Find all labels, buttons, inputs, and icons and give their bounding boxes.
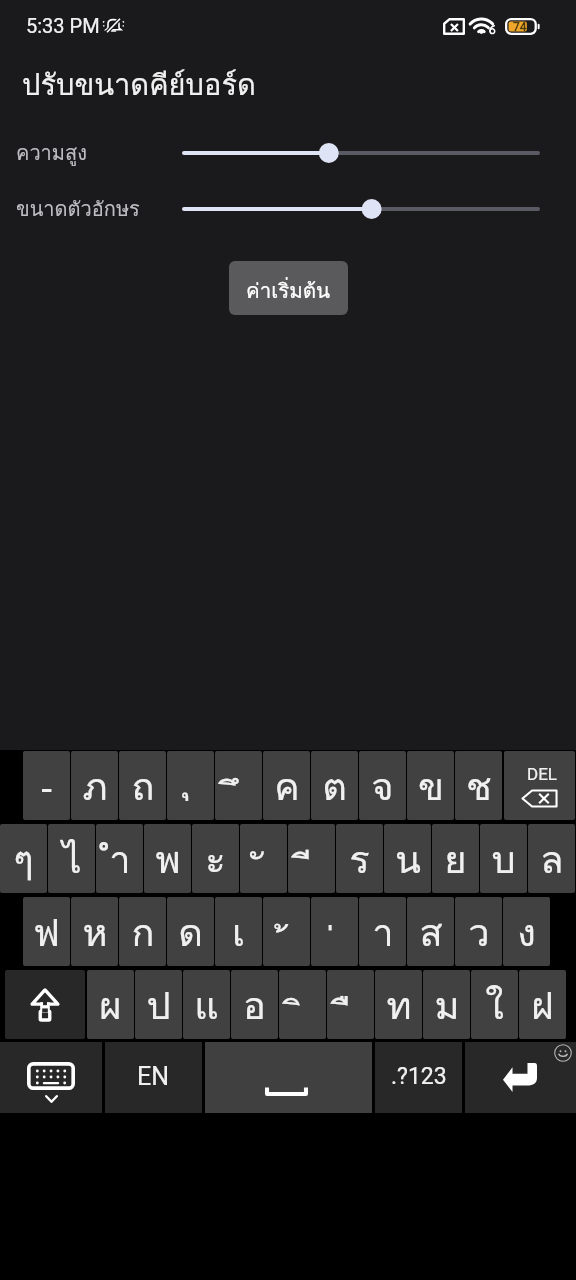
button[interactable]: ี [288,824,335,893]
staticText: น [395,829,421,889]
staticText: ๆ [13,829,34,889]
button[interactable]: ื [327,970,374,1039]
button[interactable]: พ [144,824,191,893]
button[interactable]: ผ [87,970,134,1039]
staticText: ท [386,975,412,1035]
button[interactable]: ส [407,897,454,966]
button[interactable]: น [384,824,431,893]
staticText: แ [194,975,219,1035]
staticText: ด [178,902,203,962]
button[interactable]: Enter [465,1042,576,1113]
button[interactable]: - [23,751,70,820]
button[interactable]: ฝ [519,970,566,1039]
button[interactable]: Delete [504,751,575,820]
staticText: .?123 [391,1063,447,1090]
staticText: ค่าเริ่มต้น [246,274,331,307]
staticText: ล [540,829,564,889]
staticText: ว [468,902,490,962]
staticText: ต [322,756,347,816]
staticText: 74 [513,20,527,34]
button[interactable]: ห [71,897,118,966]
button[interactable]: ข [407,751,454,820]
button[interactable]: ภ [71,751,118,820]
staticText: ขนาดตัวอักษร [16,193,140,225]
button[interactable]: ช [455,751,502,820]
button[interactable]: ง [503,897,550,966]
staticText: ก [131,902,155,962]
staticText: ภ [82,756,108,816]
button[interactable]: ฟ [23,897,70,966]
button[interactable]: ั [240,824,287,893]
button[interactable]: ด [167,897,214,966]
button[interactable]: EN [105,1042,202,1113]
button[interactable]: ค่าเริ่มต้น [229,261,348,315]
button[interactable]: ท [375,970,422,1039]
staticText: EN [137,1062,170,1091]
button[interactable]: ใ [471,970,518,1039]
staticText: บ [491,829,516,889]
button[interactable]: อ [231,970,278,1039]
button[interactable]: ป [135,970,182,1039]
staticText: ปรับขนาดคีย์บอร์ด [22,62,256,108]
button[interactable]: ้ [263,897,310,966]
button[interactable]: ำ [96,824,143,893]
staticText: ม [434,975,460,1035]
button[interactable]: ะ [192,824,239,893]
button[interactable]: Hide keyboard [0,1042,102,1113]
button[interactable]: ไ [48,824,95,893]
staticText: ห [82,902,108,962]
staticText: ข [418,756,444,816]
button[interactable]: Shift [5,970,85,1039]
button[interactable]: จ [359,751,406,820]
staticText: พ [155,829,181,889]
staticText: ไ [62,829,82,889]
staticText: ป [146,975,171,1035]
button[interactable]: ุ [167,751,214,820]
staticText: จ [371,756,394,816]
button[interactable]: ๆ [0,824,47,893]
button[interactable]: ล [528,824,575,893]
staticText: า [372,902,394,962]
button[interactable]: ม [423,970,470,1039]
button[interactable]: า [359,897,406,966]
button[interactable]: ก [119,897,166,966]
staticText: ร [349,829,370,889]
staticText: ะ [205,829,226,889]
staticText: DEL [527,764,557,784]
button[interactable]: ว [455,897,502,966]
staticText: ฟ [33,902,60,962]
staticText: ถ [131,756,155,816]
button[interactable]: ึ [215,751,262,820]
staticText: ฝ [531,975,554,1035]
staticText: เ [232,902,245,962]
staticText: ำ [109,829,131,889]
button[interactable]: ต [311,751,358,820]
staticText: ง [517,902,536,962]
staticText: 5:33 PM [26,14,100,37]
staticText: ช [466,756,492,816]
staticText: ส [419,902,443,962]
button[interactable]: ย [432,824,479,893]
button[interactable]: .?123 [375,1042,462,1113]
staticText: - [40,760,53,812]
button[interactable]: ค [263,751,310,820]
button[interactable]: ิ [279,970,326,1039]
staticText: ค [274,756,300,816]
button[interactable]: ถ [119,751,166,820]
button[interactable]: บ [480,824,527,893]
staticText: อ [243,975,266,1035]
staticText: ผ [99,975,122,1035]
button[interactable]: ่ [311,897,358,966]
button[interactable]: เ [215,897,262,966]
staticText: ใ [485,975,504,1035]
button[interactable]: Space [205,1042,372,1113]
staticText: ความสูง [16,137,87,169]
button[interactable]: แ [183,970,230,1039]
staticText: ย [444,829,467,889]
button[interactable]: ร [336,824,383,893]
